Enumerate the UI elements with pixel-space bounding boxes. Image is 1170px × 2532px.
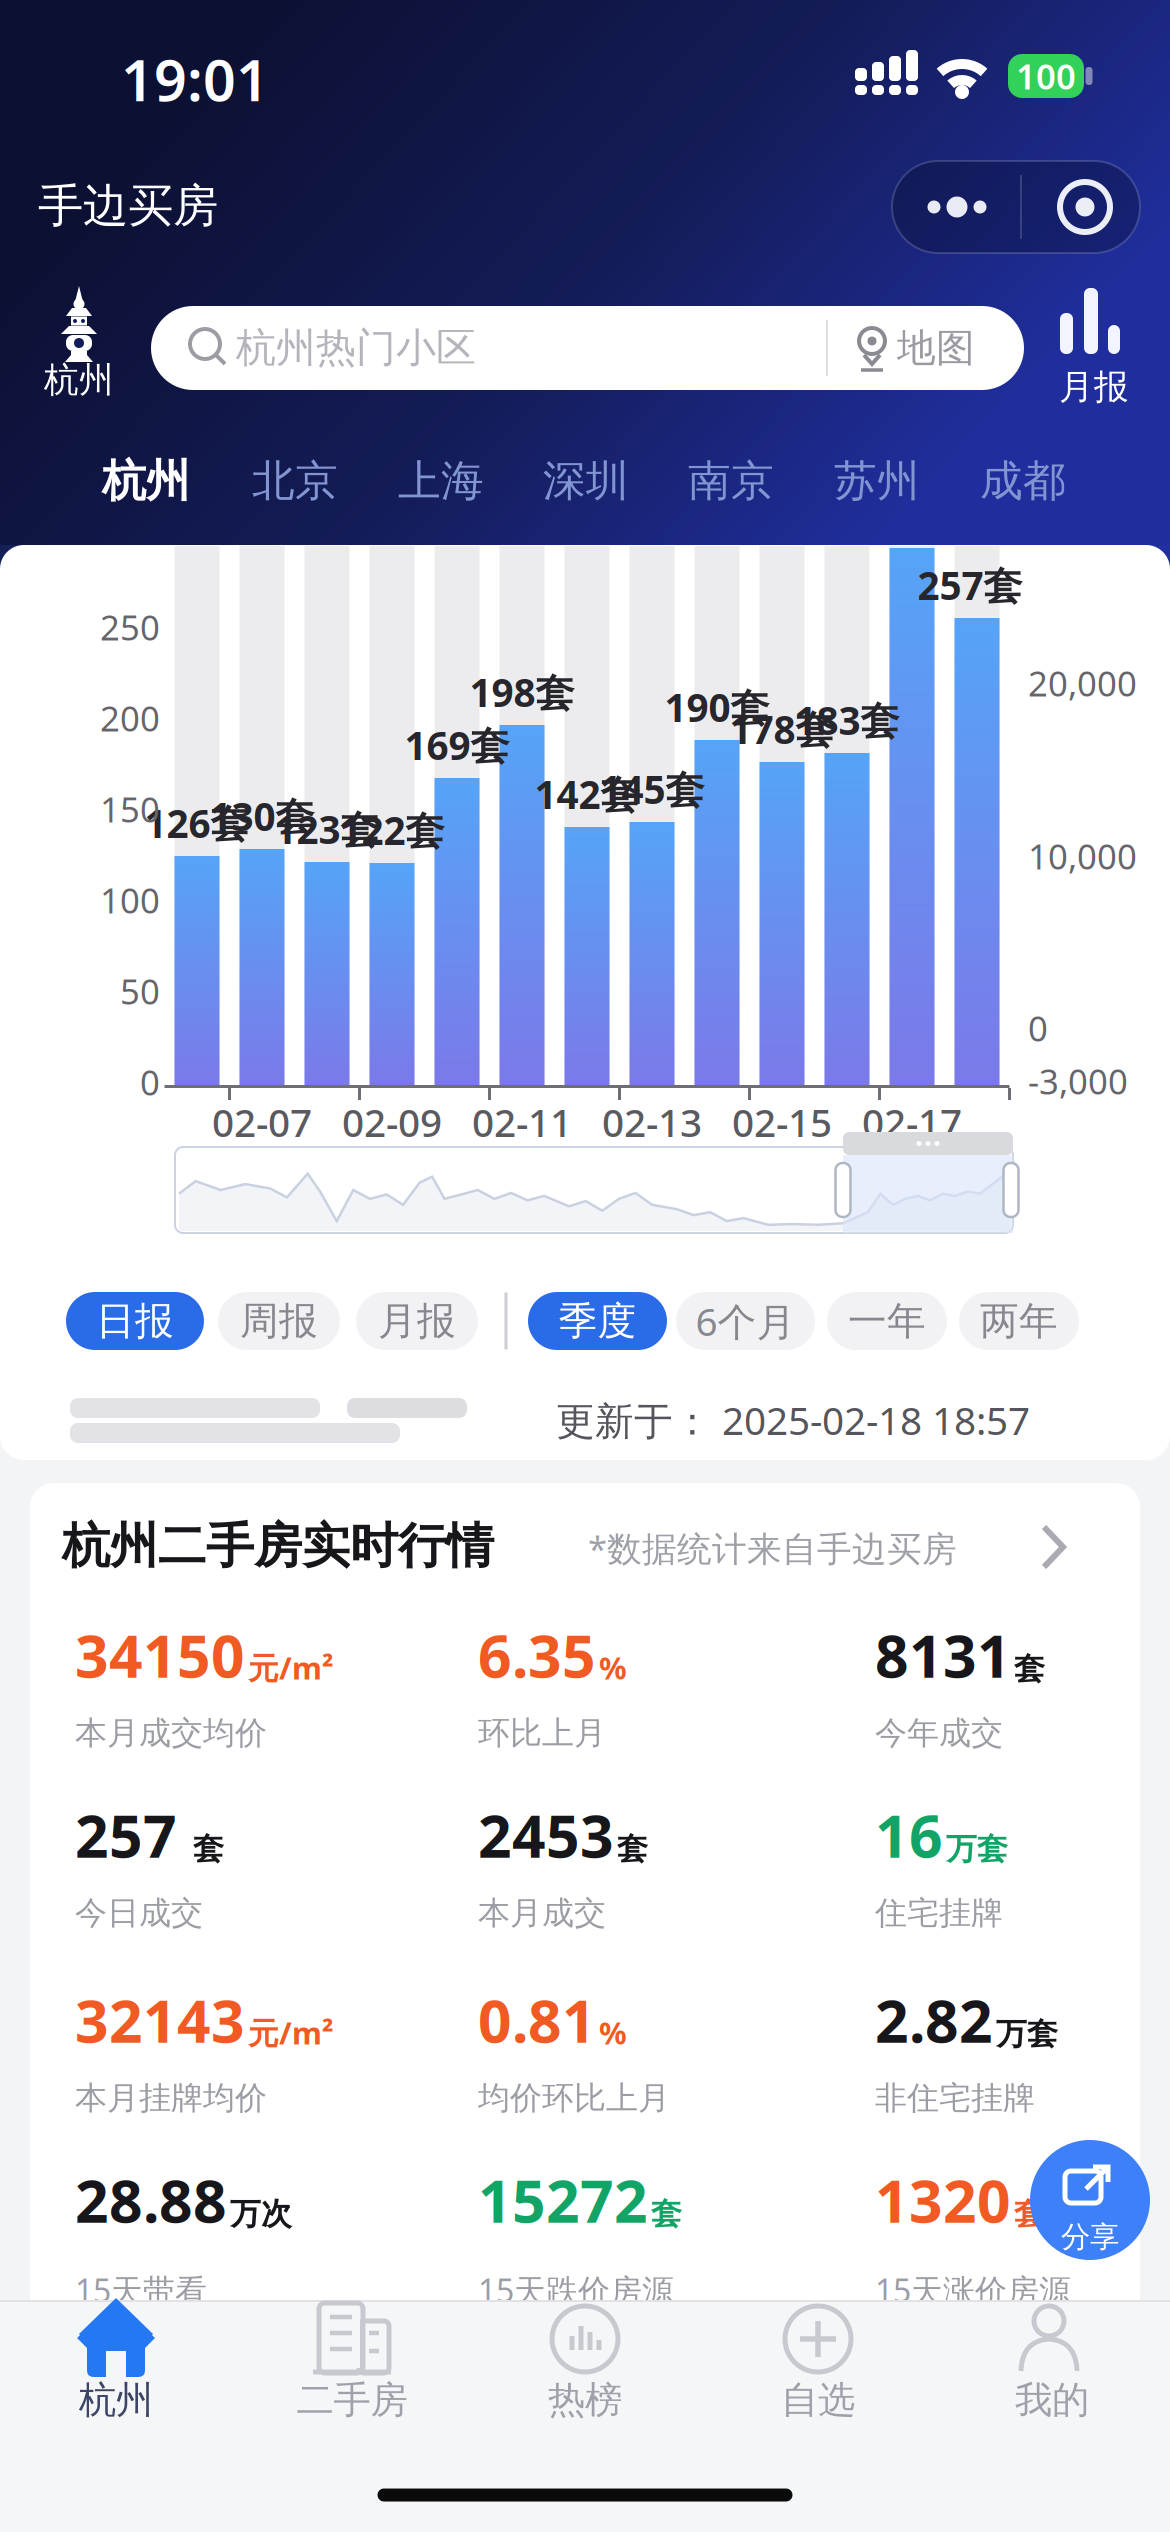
button[interactable]: 二手房 xyxy=(242,2292,462,2422)
button[interactable]: 上海 xyxy=(398,455,484,507)
staticText: 杭州 xyxy=(44,359,114,401)
staticText: 本月成交均价 xyxy=(75,1713,267,1753)
button[interactable]: 北京 xyxy=(252,455,338,507)
button[interactable]: 我的 xyxy=(940,2292,1160,2422)
staticText: 183套 xyxy=(794,694,899,746)
staticText: 178套 xyxy=(729,703,834,755)
button[interactable]: 一年 xyxy=(827,1292,947,1350)
staticText: 2453 xyxy=(478,1796,614,1874)
staticText: 123套 xyxy=(274,803,379,855)
staticText: 套 xyxy=(1014,2195,1045,2233)
staticText: 32143 xyxy=(75,1981,245,2059)
staticText: 元/m² xyxy=(248,1647,334,1688)
staticText: 日报 xyxy=(96,1297,174,1345)
staticText: 169套 xyxy=(404,719,509,771)
staticText: 周报 xyxy=(240,1297,318,1345)
staticText: 热榜 xyxy=(548,2377,622,2423)
staticText: 本月挂牌均价 xyxy=(75,2078,267,2118)
staticText: 深圳 xyxy=(543,455,629,507)
button[interactable] xyxy=(892,161,1140,253)
staticText: 6个月 xyxy=(695,1295,795,1347)
staticText: 8131 xyxy=(875,1616,1011,1694)
staticText: 万套 xyxy=(996,2015,1058,2053)
button[interactable]: 成都 xyxy=(980,455,1066,507)
staticText: 34150 xyxy=(75,1616,245,1694)
staticText: 50 xyxy=(120,968,160,1014)
staticText: 10,000 xyxy=(1028,833,1137,879)
staticText: 杭州 xyxy=(79,2377,153,2423)
staticText: 28.88 xyxy=(75,2161,227,2239)
button[interactable]: 月报 xyxy=(1024,285,1164,405)
button[interactable]: 两年 xyxy=(959,1292,1079,1350)
staticText: 二手房 xyxy=(296,2377,407,2423)
staticText: 0.81 xyxy=(478,1981,596,2059)
staticText: 130套 xyxy=(209,790,314,842)
staticText: 元/m² xyxy=(248,2012,334,2053)
staticText: *数据统计来自手边买房 xyxy=(588,1525,957,1571)
button[interactable]: 季度 xyxy=(528,1292,667,1350)
button[interactable]: 自选 xyxy=(708,2292,928,2422)
staticText: -3,000 xyxy=(1028,1058,1128,1104)
button[interactable]: 周报 xyxy=(218,1292,340,1350)
staticText: 南京 xyxy=(688,455,774,507)
staticText: 20,000 xyxy=(1028,660,1137,706)
button[interactable]: 杭州 xyxy=(102,454,190,508)
button[interactable]: 南京 xyxy=(688,455,774,507)
staticText: % xyxy=(599,2012,627,2053)
staticText: 套 xyxy=(617,1830,648,1868)
staticText: 02-15 xyxy=(732,1096,832,1148)
staticText: 122套 xyxy=(339,804,444,856)
button[interactable]: 杭州 xyxy=(19,282,139,402)
staticText: 住宅挂牌 xyxy=(875,1893,1003,1933)
staticText: 02-17 xyxy=(862,1096,962,1148)
staticText: 02-09 xyxy=(342,1096,442,1148)
staticText: 15272 xyxy=(478,2161,648,2239)
staticText: 126套 xyxy=(144,797,249,849)
button[interactable]: 6个月 xyxy=(676,1292,815,1350)
staticText: 6.35 xyxy=(478,1616,596,1694)
staticText: 套 xyxy=(1014,1650,1045,1688)
staticText: 杭州二手房实时行情 xyxy=(62,1516,494,1575)
button[interactable]: 杭州热门小区 xyxy=(151,306,1024,390)
staticText: 15天带看 xyxy=(75,2269,207,2311)
staticText: 本月成交 xyxy=(478,1893,606,1933)
staticText: 02-07 xyxy=(212,1096,312,1148)
staticText: 0 xyxy=(140,1059,160,1105)
button[interactable]: 苏州 xyxy=(834,455,920,507)
staticText: 今日成交 xyxy=(75,1893,203,1933)
staticText: 北京 xyxy=(252,455,338,507)
staticText: 杭州 xyxy=(102,454,190,508)
button[interactable]: 热榜 xyxy=(475,2292,695,2422)
staticText: 16 xyxy=(875,1796,943,1874)
staticText: 15天涨价房源 xyxy=(875,2269,1071,2311)
staticText: 257 xyxy=(75,1796,177,1874)
staticText: 15天跌价房源 xyxy=(478,2269,674,2311)
staticText: 19:01 xyxy=(121,41,269,117)
staticText: 一年 xyxy=(848,1297,926,1345)
staticText: 月报 xyxy=(1059,366,1129,408)
staticText: 150 xyxy=(100,786,160,832)
staticText: 万次 xyxy=(230,2195,292,2233)
staticText: 套 xyxy=(651,2195,682,2233)
staticText: 142套 xyxy=(534,768,639,820)
staticText: 0 xyxy=(1028,1005,1048,1051)
staticText: 均价环比上月 xyxy=(478,2078,670,2118)
staticText: 02-11 xyxy=(472,1096,572,1148)
staticText: 200 xyxy=(100,695,160,741)
staticText: 1320 xyxy=(875,2161,1011,2239)
button[interactable]: 杭州 xyxy=(6,2292,226,2422)
staticText: 月报 xyxy=(378,1297,456,1345)
staticText: 更新于： 2025-02-18 18:57 xyxy=(556,1394,1030,1446)
staticText: 我的 xyxy=(1015,2377,1089,2423)
button[interactable]: 月报 xyxy=(356,1292,478,1350)
staticText: 今年成交 xyxy=(875,1713,1003,1753)
staticText: 季度 xyxy=(558,1297,636,1345)
staticText: 250 xyxy=(100,604,160,650)
staticText: 上海 xyxy=(398,455,484,507)
button[interactable]: 分享 xyxy=(1030,2140,1150,2260)
button[interactable]: 日报 xyxy=(66,1292,204,1350)
button[interactable] xyxy=(1023,1517,1083,1577)
staticText: 2.82 xyxy=(875,1981,993,2059)
button[interactable]: 深圳 xyxy=(543,455,629,507)
staticText: 杭州热门小区 xyxy=(236,323,476,372)
